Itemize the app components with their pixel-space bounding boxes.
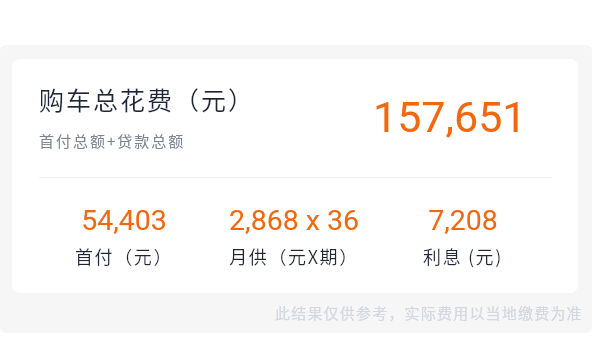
staticText: 54,403 xyxy=(81,204,167,237)
staticText: 首付总额+贷款总额 xyxy=(39,130,186,152)
staticText: 购车总花费（元） xyxy=(39,81,256,117)
button[interactable]: 2,868 x 36 xyxy=(209,204,378,269)
staticText: 157,651 xyxy=(373,92,527,142)
staticText: 首付（元） xyxy=(75,243,173,269)
button[interactable]: 7,208 xyxy=(378,204,547,269)
staticText: 利息 (元) xyxy=(423,243,503,269)
staticText: 此结果仅供参考，实际费用以当地缴费为准 xyxy=(275,302,583,324)
staticText: 2,868 x 36 xyxy=(229,204,359,237)
button[interactable]: 54,403 xyxy=(39,204,209,269)
staticText: 7,208 xyxy=(428,204,498,237)
staticText: 月供（元X期） xyxy=(229,243,359,269)
